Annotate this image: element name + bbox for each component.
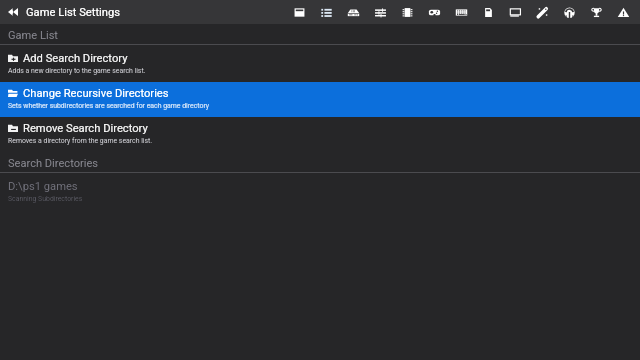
button[interactable]: Back xyxy=(0,0,26,24)
button[interactable]: Summary xyxy=(286,0,313,24)
button[interactable]: Memory Cards xyxy=(475,0,502,24)
button[interactable]: Achievements xyxy=(583,0,610,24)
button[interactable]: Memory xyxy=(394,0,421,24)
button[interactable]: D:\ps1 games xyxy=(0,175,640,210)
staticText: Game List xyxy=(8,29,58,42)
button[interactable]: Add Search Directory xyxy=(0,47,640,82)
button[interactable]: Remove Search Directory xyxy=(0,117,640,152)
staticText: Sets whether subdirectories are searched… xyxy=(8,102,210,110)
button[interactable]: Audio xyxy=(556,0,583,24)
button[interactable]: Hotkeys xyxy=(448,0,475,24)
staticText: Search Directories xyxy=(8,157,99,170)
staticText: Add Search Directory xyxy=(23,52,128,65)
staticText: Change Recursive Directories xyxy=(23,87,169,100)
staticText: Scanning Subdirectories xyxy=(8,195,83,203)
button[interactable]: Game List xyxy=(313,0,340,24)
button[interactable]: Change Recursive Directories xyxy=(0,82,640,117)
staticText: Game List Settings xyxy=(26,6,121,19)
button[interactable]: Enhancements xyxy=(529,0,556,24)
button[interactable]: Console xyxy=(340,0,367,24)
button[interactable]: Display xyxy=(502,0,529,24)
button[interactable]: Controllers xyxy=(421,0,448,24)
staticText: Remove Search Directory xyxy=(23,122,148,135)
button[interactable]: Advanced xyxy=(610,0,637,24)
staticText: Adds a new directory to the game search … xyxy=(8,67,146,75)
button[interactable]: Emulation xyxy=(367,0,394,24)
staticText: D:\ps1 games xyxy=(8,180,78,193)
staticText: Removes a directory from the game search… xyxy=(8,137,153,145)
